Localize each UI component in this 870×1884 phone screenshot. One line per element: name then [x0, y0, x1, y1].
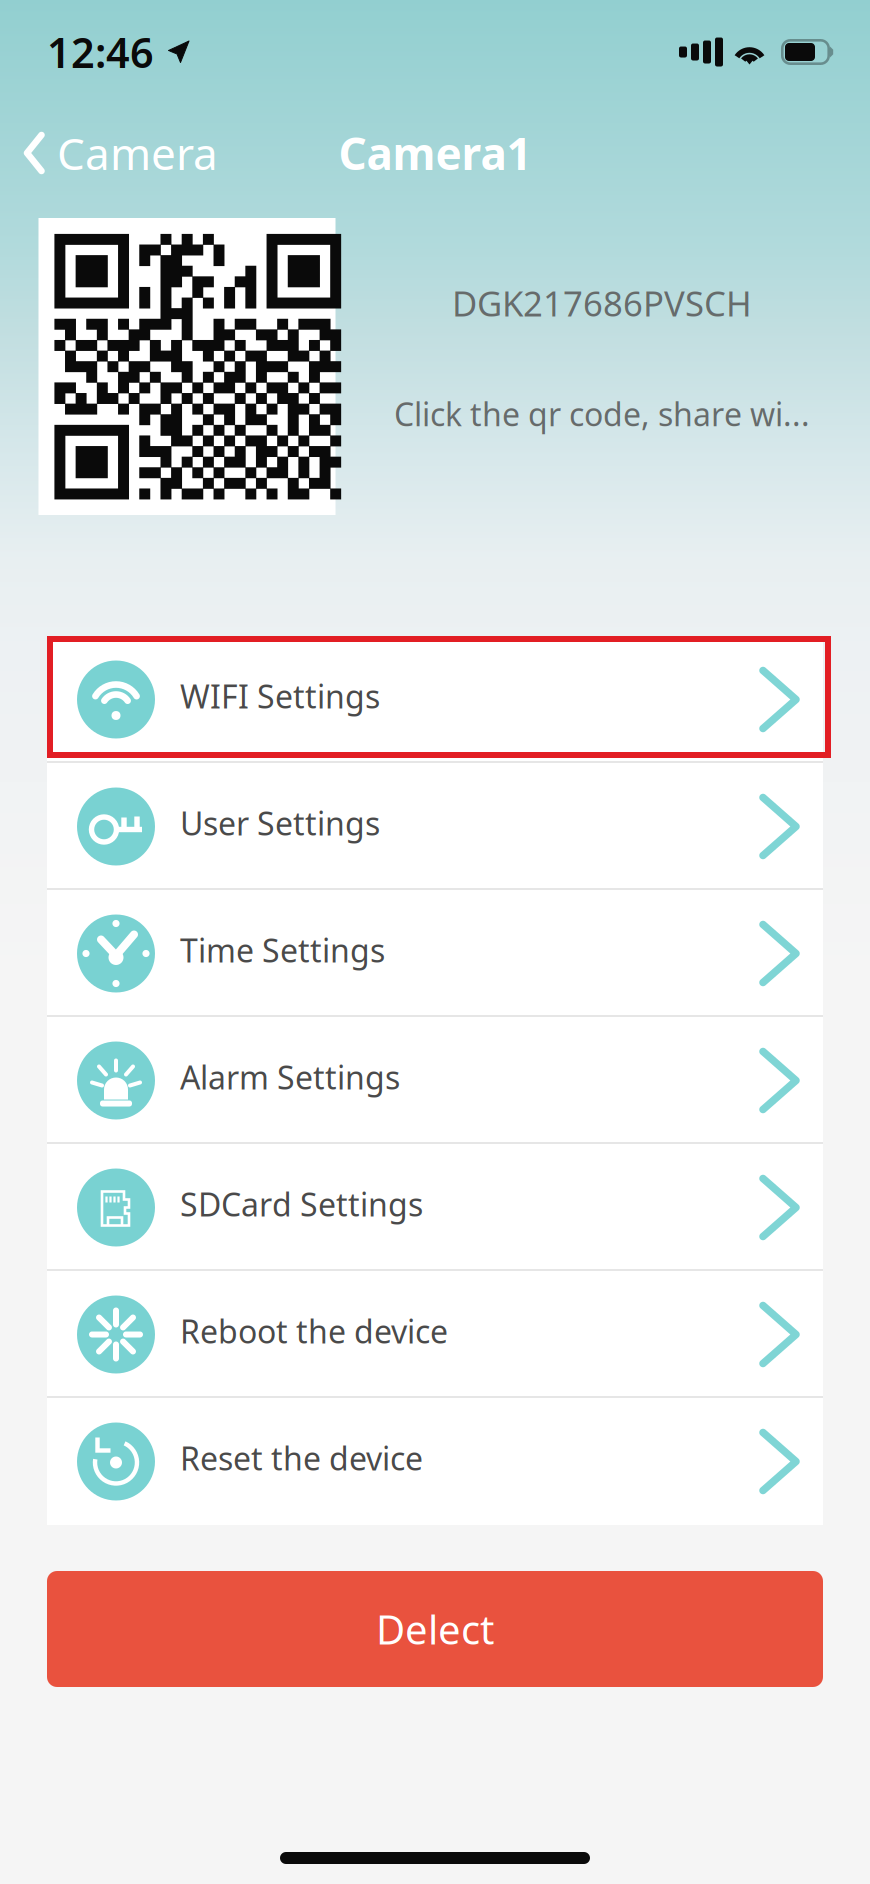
staticText: Reboot the device: [180, 1310, 448, 1352]
staticText: Reset the device: [180, 1437, 423, 1479]
button[interactable]: Time Settings: [47, 890, 823, 1017]
button[interactable]: Share QR code: [38, 218, 335, 515]
button[interactable]: Camera: [0, 110, 232, 196]
staticText: Camera1: [338, 124, 531, 182]
button[interactable]: SDCard Settings: [47, 1144, 823, 1271]
staticText: User Settings: [180, 802, 380, 844]
staticText: Camera: [57, 124, 218, 182]
staticText: SDCard Settings: [180, 1183, 423, 1225]
button[interactable]: Reboot the device: [47, 1271, 823, 1398]
staticText: 12:46: [47, 25, 154, 79]
staticText: Click the qr code, share wi...: [394, 392, 810, 435]
button[interactable]: Delect: [47, 1571, 823, 1687]
button[interactable]: Reset the device: [47, 1398, 823, 1525]
staticText: DGK217686PVSCH: [452, 280, 752, 326]
staticText: Time Settings: [180, 929, 385, 971]
staticText: Delect: [376, 1602, 494, 1655]
staticText: Alarm Settings: [180, 1056, 400, 1098]
button[interactable]: WIFI Settings: [47, 636, 823, 763]
staticText: WIFI Settings: [180, 675, 380, 717]
button[interactable]: User Settings: [47, 763, 823, 890]
button[interactable]: Alarm Settings: [47, 1017, 823, 1144]
